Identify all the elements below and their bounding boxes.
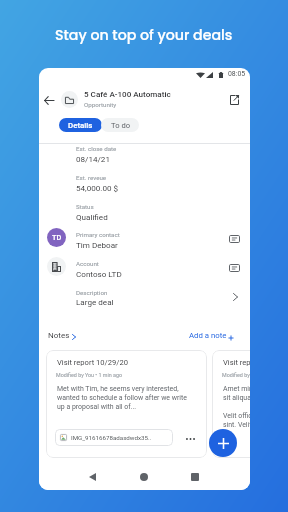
staticText: Status [76, 203, 94, 210]
staticText: IMG_91616678adasdwdx35.. [71, 434, 152, 441]
staticText: Qualified [76, 212, 108, 221]
button[interactable]: Add a note [187, 329, 239, 345]
button[interactable]: Account [39, 256, 250, 283]
button[interactable]: Open contact card [225, 229, 244, 248]
staticText: TD [52, 233, 62, 242]
staticText: Description [76, 289, 108, 296]
staticText: 54,000.00 $ [76, 183, 119, 192]
button[interactable]: IMG_91616678adasdwdx35.. [55, 429, 173, 446]
staticText: Add a note [189, 331, 227, 340]
button[interactable]: Visit report 10/29/20 [212, 350, 250, 458]
button[interactable]: Notes [45, 329, 79, 345]
button[interactable]: More options [182, 431, 198, 447]
staticText: Opportunity [84, 101, 117, 108]
button[interactable]: Back [40, 91, 58, 109]
button[interactable]: Add note [209, 429, 237, 457]
staticText: Large deal [76, 297, 114, 306]
button[interactable]: Recent apps [185, 467, 205, 487]
button[interactable]: Est. reveue [39, 170, 250, 196]
button[interactable]: Est. close date [39, 141, 250, 167]
staticText: 5 Café A-100 Automatic [84, 89, 171, 98]
button[interactable]: Status [39, 199, 250, 225]
button[interactable]: Open contact card [225, 258, 244, 277]
staticText: Est. reveue [76, 174, 107, 181]
button[interactable]: Open in new window [225, 90, 244, 109]
staticText: Amet minim mollit non deserunt sit aliqu… [223, 385, 250, 429]
button[interactable]: Description [39, 285, 250, 311]
button[interactable]: Back [82, 467, 102, 487]
staticText: 08/14/21 [76, 154, 110, 163]
button[interactable]: To do [101, 118, 139, 132]
staticText: To do [111, 121, 130, 130]
button[interactable]: Visit report 10/29/20 [46, 350, 207, 458]
staticText: Contoso LTD [76, 269, 122, 278]
staticText: Modified by You • 1 min ago [222, 372, 250, 378]
staticText: Stay on top of your deals [55, 25, 233, 45]
button[interactable]: TD [39, 227, 250, 254]
staticText: 08:05 [228, 70, 246, 78]
staticText: Tim Deboar [76, 240, 118, 249]
staticText: Visit report 10/29/20 [223, 358, 250, 367]
staticText: Est. close date [76, 145, 117, 152]
button[interactable]: Home [134, 467, 154, 487]
staticText: Modified by You • 1 min ago [56, 372, 123, 378]
staticText: Account [76, 260, 99, 267]
staticText: Met with Tim, he seems very interested, … [57, 385, 187, 411]
staticText: Notes [48, 331, 70, 340]
button[interactable]: Details [59, 118, 102, 132]
staticText: Visit report 10/29/20 [57, 358, 128, 367]
staticText: Primary contact [76, 231, 120, 238]
staticText: Details [68, 121, 93, 130]
